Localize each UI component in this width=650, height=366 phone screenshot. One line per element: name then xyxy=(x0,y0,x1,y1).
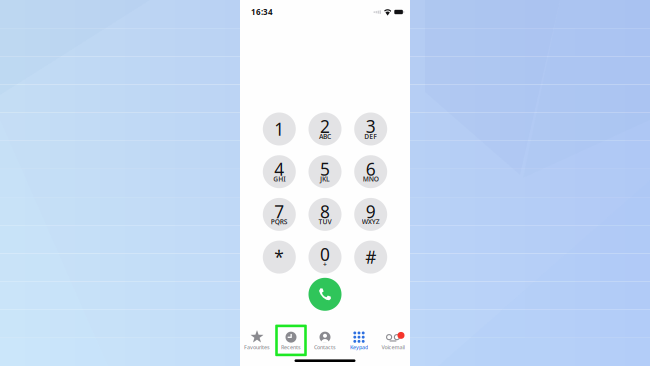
staticText: 8 xyxy=(320,200,330,223)
staticText: * xyxy=(274,246,284,269)
button[interactable]: 4 xyxy=(263,155,296,188)
button[interactable]: 0 xyxy=(308,241,341,274)
staticText: DEF xyxy=(364,132,377,141)
button[interactable]: 1 xyxy=(263,112,296,145)
button[interactable]: 7 xyxy=(263,198,296,231)
staticText: PQRS xyxy=(271,217,288,226)
button[interactable]: Keypad xyxy=(342,331,376,349)
staticText: 7 xyxy=(274,200,284,223)
staticText: GHI xyxy=(273,175,285,183)
button[interactable]: # xyxy=(354,241,387,274)
staticText: WXYZ xyxy=(362,217,380,226)
staticText: Voicemail xyxy=(381,344,404,351)
button[interactable]: * xyxy=(263,241,296,274)
button[interactable]: 6 xyxy=(354,155,387,188)
staticText: 6 xyxy=(366,157,376,180)
button[interactable]: Voicemail xyxy=(376,331,410,349)
staticText: ABC xyxy=(319,132,331,141)
staticText: 1 xyxy=(274,117,284,140)
staticText: 4 xyxy=(274,157,284,180)
staticText: + xyxy=(323,260,327,269)
staticText: Keypad xyxy=(350,344,368,351)
button[interactable]: Contacts xyxy=(308,331,342,349)
staticText: Contacts xyxy=(314,344,336,351)
staticText: 2 xyxy=(320,115,330,138)
button[interactable]: Recents xyxy=(274,331,308,349)
staticText: Recents xyxy=(281,344,301,351)
staticText: 9 xyxy=(366,200,376,223)
staticText: Favourites xyxy=(244,344,270,351)
staticText: TUV xyxy=(318,217,331,226)
button[interactable]: 2 xyxy=(308,112,341,145)
staticText: MNO xyxy=(363,175,379,183)
staticText: 0 xyxy=(320,243,330,266)
button[interactable]: 8 xyxy=(308,198,341,231)
staticText: 3 xyxy=(366,115,376,138)
staticText: # xyxy=(365,246,376,269)
button[interactable]: 9 xyxy=(354,198,387,231)
button[interactable]: 3 xyxy=(354,112,387,145)
staticText: JKL xyxy=(320,175,330,183)
staticText: 5 xyxy=(320,157,330,180)
button[interactable]: Call xyxy=(308,278,341,311)
button[interactable]: 5 xyxy=(308,155,341,188)
staticText: 16:34 xyxy=(251,7,273,17)
button[interactable]: Favourites xyxy=(240,331,274,349)
